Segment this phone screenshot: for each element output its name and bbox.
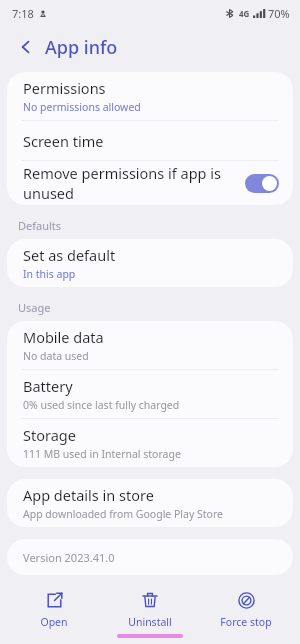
staticText: App info	[45, 35, 118, 60]
button[interactable]: Set as default	[7, 239, 293, 287]
button[interactable]: Remove permissions if app is unused togg…	[245, 174, 279, 193]
staticText: Storage	[23, 425, 76, 445]
staticText: 0% used since last fully charged	[23, 398, 180, 412]
staticText: Set as default	[23, 245, 116, 265]
button[interactable]: Battery	[7, 370, 293, 418]
button[interactable]: Remove permissions if app is unused	[7, 161, 293, 205]
staticText: Version 2023.41.0	[23, 550, 115, 565]
button[interactable]: Back	[13, 34, 39, 60]
button[interactable]: Open	[12, 587, 96, 631]
staticText: No data used	[23, 349, 89, 363]
staticText: 70%	[268, 6, 290, 21]
button[interactable]: App details in store	[7, 479, 293, 527]
staticText: Defaults	[18, 218, 62, 233]
button[interactable]: Permissions	[7, 72, 293, 120]
staticText: Battery	[23, 376, 73, 396]
staticText: No permissions allowed	[23, 100, 141, 114]
button[interactable]: Uninstall	[108, 587, 192, 631]
staticText: Screen time	[23, 131, 104, 151]
staticText: Force stop	[220, 615, 272, 629]
staticText: Permissions	[23, 78, 106, 98]
staticText: Uninstall	[128, 615, 172, 629]
staticText: Usage	[18, 300, 51, 315]
staticText: App details in store	[23, 485, 154, 505]
button[interactable]: Screen time	[7, 121, 293, 160]
staticText: Remove permissions if app is unused	[23, 163, 245, 203]
button[interactable]: Mobile data	[7, 321, 293, 369]
staticText: In this app	[23, 267, 76, 281]
button[interactable]: Force stop	[204, 587, 288, 631]
staticText: 7:18	[12, 6, 34, 21]
staticText: Open	[40, 615, 68, 629]
button[interactable]: Storage	[7, 419, 293, 467]
staticText: 4G	[239, 8, 250, 19]
staticText: App downloaded from Google Play Store	[23, 507, 224, 521]
staticText: Mobile data	[23, 327, 104, 347]
staticText: 111 MB used in Internal storage	[23, 447, 181, 461]
